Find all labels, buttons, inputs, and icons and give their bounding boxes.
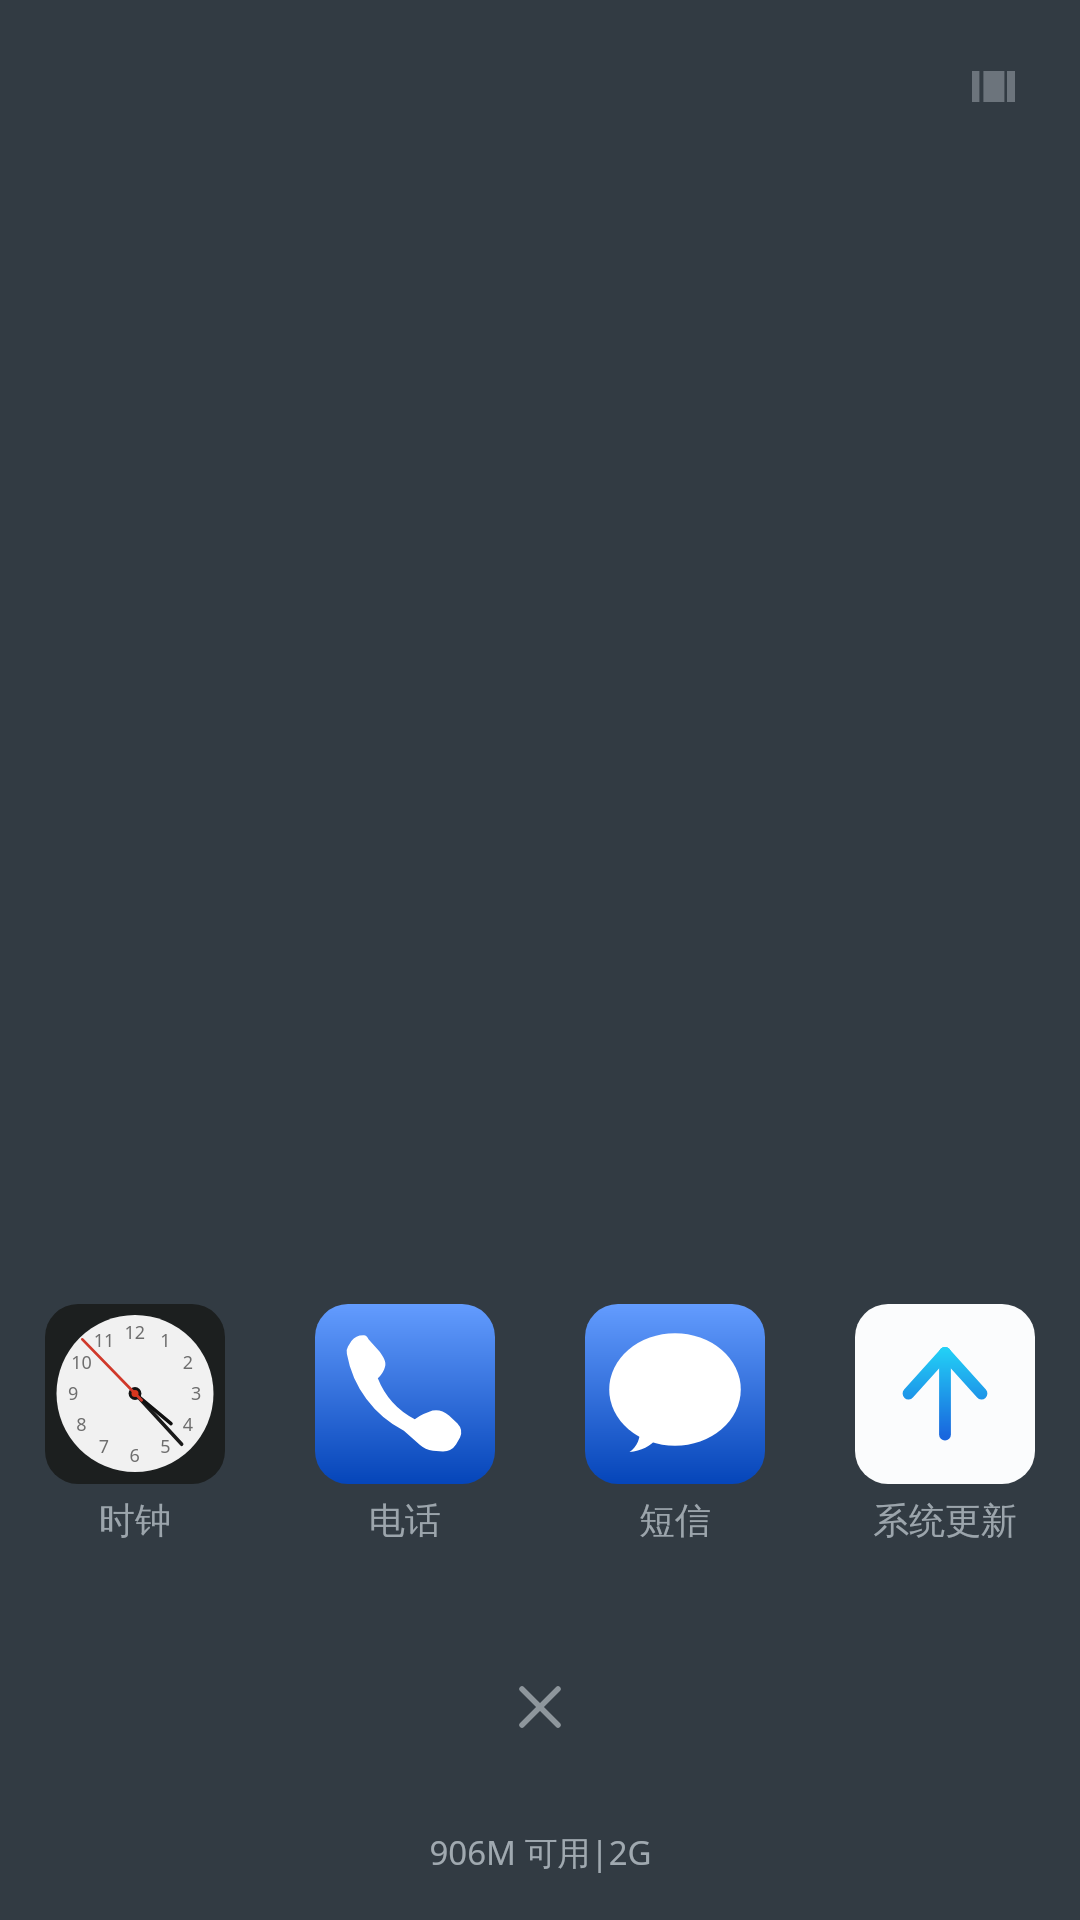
- button[interactable]: 电话: [315, 1304, 495, 1543]
- button[interactable]: Close all apps: [460, 1627, 620, 1787]
- staticText: 906M 可用|2G: [429, 1830, 652, 1875]
- staticText: 系统更新: [873, 1498, 1017, 1543]
- staticText: 短信: [639, 1498, 711, 1543]
- button[interactable]: 短信: [585, 1304, 765, 1543]
- button[interactable]: Layout switcher: [951, 51, 1035, 121]
- button[interactable]: 时钟: [45, 1304, 225, 1543]
- staticText: 电话: [369, 1498, 441, 1543]
- staticText: 时钟: [99, 1498, 171, 1543]
- button[interactable]: 系统更新: [855, 1304, 1035, 1543]
